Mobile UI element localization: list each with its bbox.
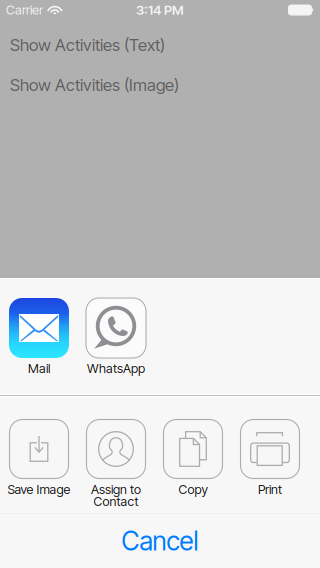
- staticText: Contact: [93, 494, 138, 509]
- staticText: Show Activities (Text): [10, 35, 165, 55]
- button[interactable]: Print: [227, 419, 313, 513]
- staticText: Show Activities (Image): [10, 75, 179, 95]
- staticText: 3:14 PM: [136, 2, 184, 18]
- staticText: Save Image: [7, 482, 70, 497]
- button[interactable]: Copy: [150, 419, 236, 513]
- button[interactable]: Cancel: [0, 514, 320, 568]
- staticText: Carrier: [6, 2, 43, 18]
- staticText: WhatsApp: [87, 361, 145, 376]
- button[interactable]: Save Image: [0, 419, 82, 513]
- staticText: Print: [258, 482, 282, 497]
- button[interactable]: Mail: [0, 298, 82, 392]
- button[interactable]: Assign to: [73, 419, 159, 513]
- staticText: Copy: [178, 482, 207, 497]
- staticText: Mail: [28, 361, 50, 376]
- staticText: Assign to: [91, 482, 141, 497]
- staticText: Cancel: [121, 525, 198, 557]
- button[interactable]: WhatsApp: [73, 298, 159, 392]
